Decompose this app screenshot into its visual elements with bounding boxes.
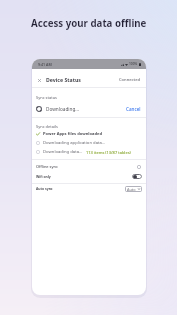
staticText: Auto (127, 187, 136, 192)
button[interactable]: Info (135, 163, 142, 170)
button[interactable]: Auto (125, 186, 142, 192)
staticText: Cancel (126, 106, 141, 112)
staticText: 100% (129, 62, 138, 66)
staticText: Wifi only (36, 174, 51, 179)
staticText: 113 items (13/87 tables) (86, 150, 131, 155)
button[interactable]: Close (35, 76, 43, 84)
button[interactable]: Connected (118, 76, 142, 84)
button[interactable]: Cancel (125, 105, 142, 113)
staticText: Downloading... (46, 106, 80, 112)
button[interactable]: Wifi only toggle (132, 174, 142, 179)
staticText: 9:41 AM (38, 62, 52, 67)
staticText: Power Apps files downloaded (43, 131, 102, 137)
staticText: Downloading application data... (43, 140, 106, 146)
staticText: Offline sync (36, 164, 58, 169)
staticText: Connected (119, 77, 141, 83)
staticText: Sync details (36, 124, 58, 129)
staticText: Device Status (46, 76, 81, 83)
staticText: Downloading data... (43, 149, 83, 155)
staticText: Auto sync (36, 186, 53, 191)
staticText: Sync status (36, 95, 57, 100)
staticText: Access your data offline (31, 17, 147, 30)
